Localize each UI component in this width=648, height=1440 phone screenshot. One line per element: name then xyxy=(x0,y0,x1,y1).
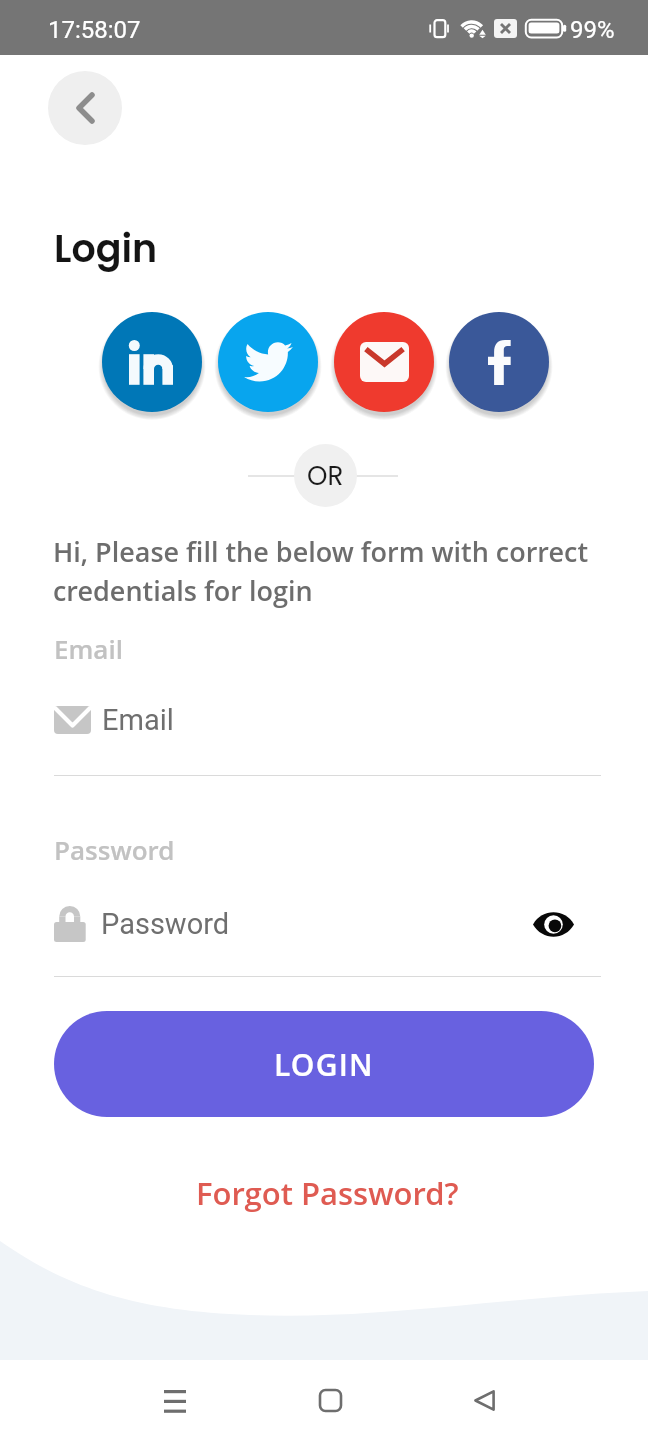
staticText: 99% xyxy=(570,16,615,44)
staticText: Password xyxy=(101,907,230,941)
button[interactable]: LOGIN xyxy=(54,1011,594,1117)
staticText: 17:58:07 xyxy=(48,16,141,44)
staticText: Forgot Password? xyxy=(196,1172,459,1214)
staticText: Email xyxy=(54,631,123,666)
button[interactable]: Home xyxy=(259,1365,401,1435)
button[interactable]: Sign in xyxy=(218,312,318,412)
button[interactable]: Back xyxy=(413,1365,555,1435)
staticText: Password xyxy=(54,832,175,867)
button[interactable]: Forgot Password? xyxy=(196,1172,459,1214)
button[interactable]: Recents xyxy=(104,1365,246,1435)
staticText: Email xyxy=(102,703,174,737)
button[interactable]: Show password xyxy=(529,900,577,948)
button[interactable]: Back xyxy=(48,71,122,145)
button[interactable]: Sign in xyxy=(334,312,434,412)
staticText: LOGIN xyxy=(274,1044,374,1085)
staticText: Hi, Please fill the below form with corr… xyxy=(53,533,603,609)
button[interactable]: Sign in xyxy=(102,312,202,412)
button[interactable]: Sign in xyxy=(449,312,549,412)
staticText: Login xyxy=(54,222,158,275)
staticText: OR xyxy=(307,458,344,494)
